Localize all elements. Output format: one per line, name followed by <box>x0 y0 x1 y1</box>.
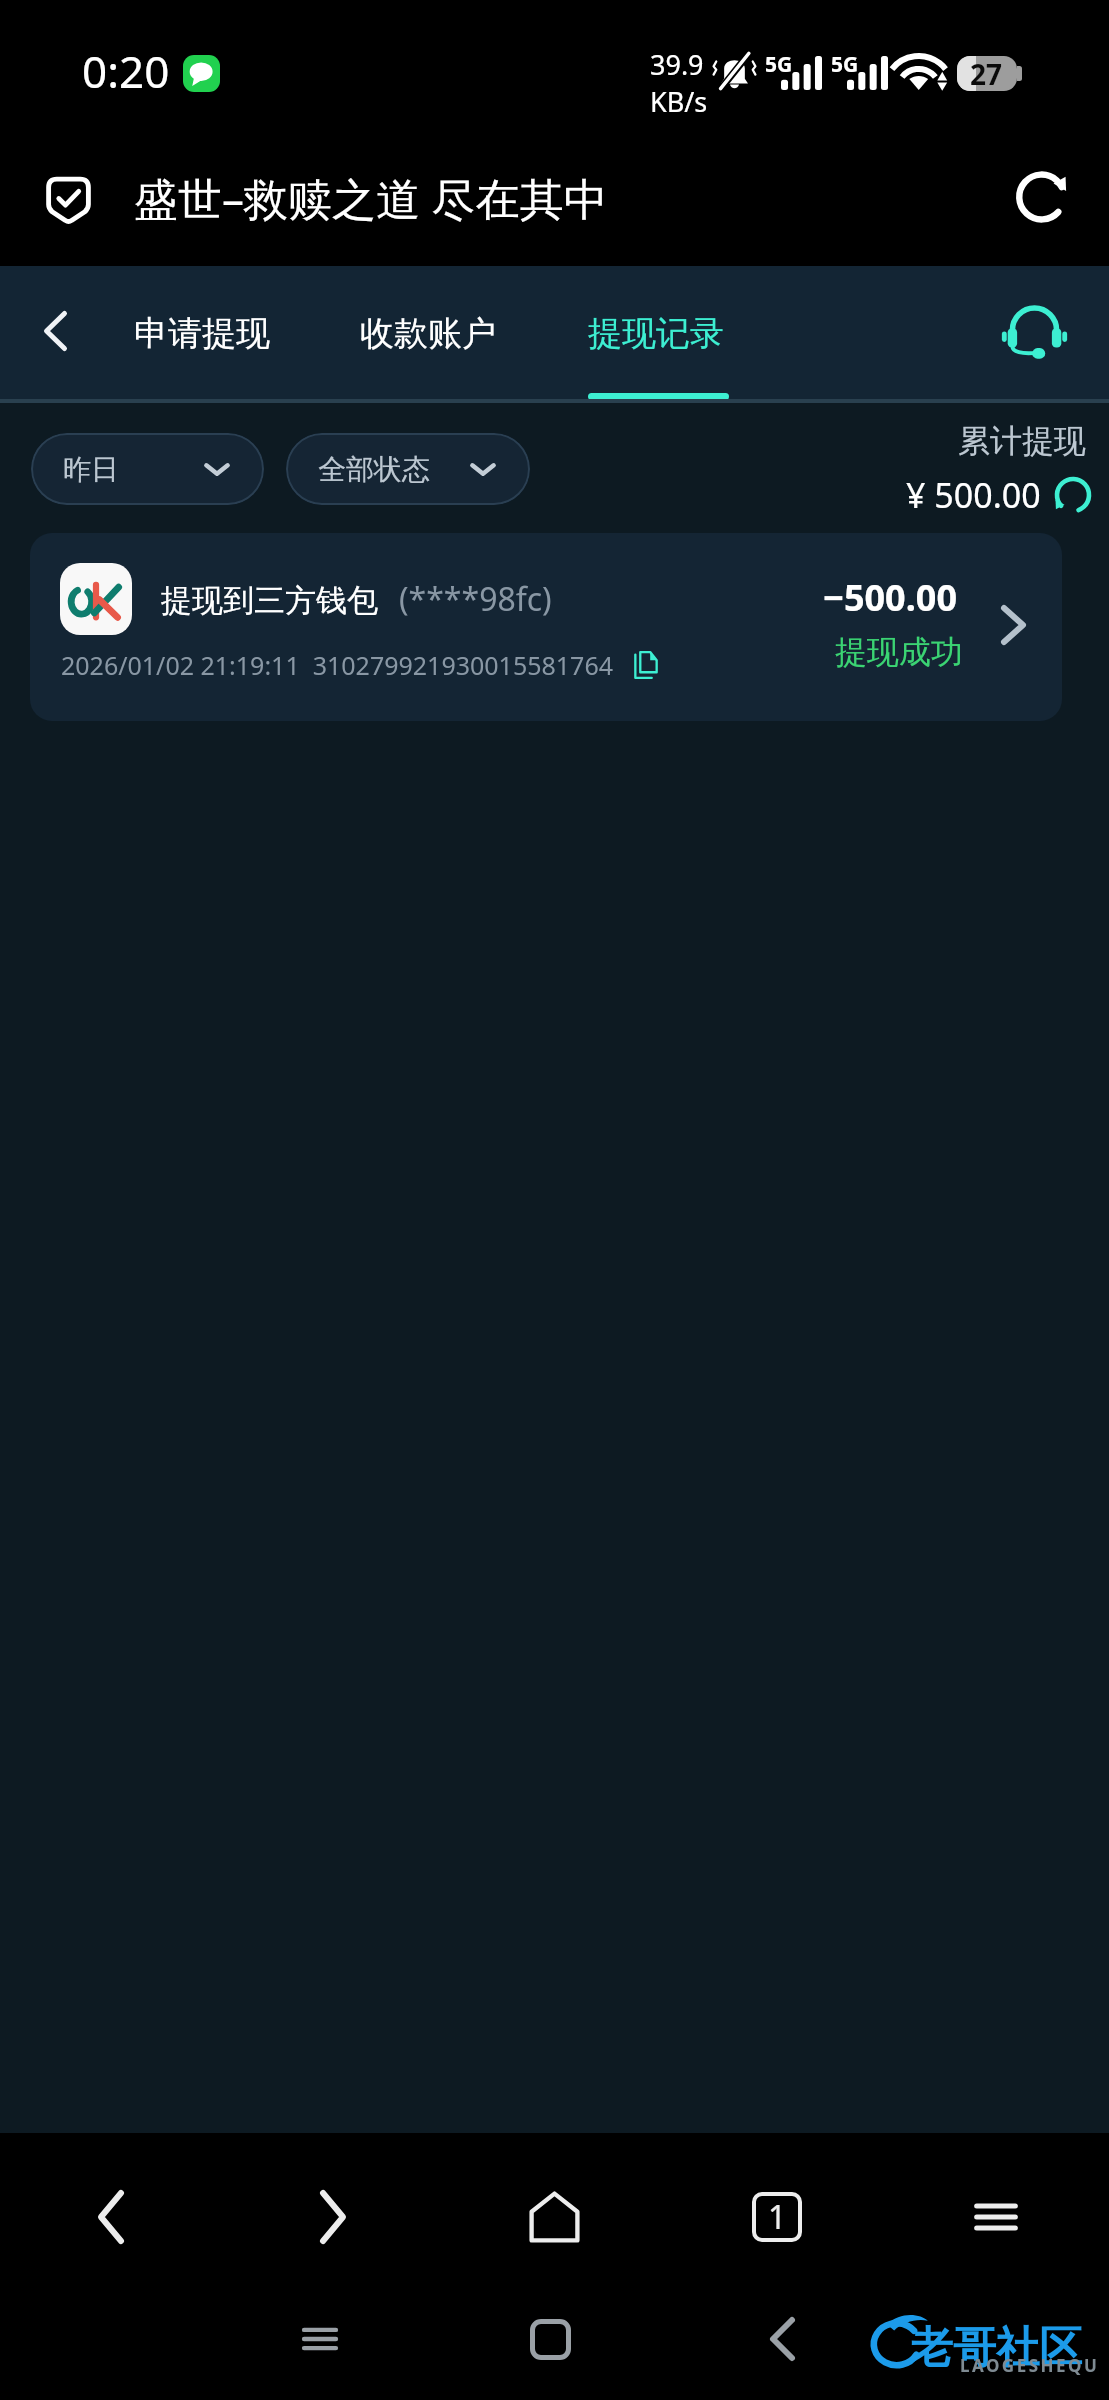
button[interactable]: 提现到三方钱包 <box>30 533 1062 721</box>
button[interactable]: Copy order number <box>623 641 669 687</box>
button[interactable]: Menu <box>964 2177 1030 2257</box>
button[interactable]: 全部状态 <box>286 433 530 505</box>
button[interactable]: Refresh total <box>1043 468 1099 524</box>
button[interactable]: Back <box>12 288 98 374</box>
staticText: 盛世–救赎之道 尽在其中 <box>134 168 608 228</box>
staticText: 39.9 <box>650 46 704 83</box>
staticText: 提现成功 <box>835 632 963 672</box>
staticText: 提现记录 <box>588 312 724 355</box>
staticText: LAOGESHEQU <box>960 2354 1100 2377</box>
button[interactable]: Forward <box>300 2177 366 2257</box>
staticText: 27 <box>970 56 1003 90</box>
button[interactable]: Home <box>521 2177 587 2257</box>
button[interactable]: Home <box>515 2293 585 2385</box>
staticText: 2026/01/02 21:19:11 31027992193001558176… <box>61 648 614 682</box>
staticText: 老哥社区 <box>910 2321 1082 2375</box>
staticText: 5G <box>831 50 859 79</box>
staticText: −500.00 <box>823 573 957 622</box>
staticText: 1 <box>768 2195 787 2239</box>
staticText: 5G <box>765 50 793 79</box>
staticText: KB/s <box>650 83 708 120</box>
button[interactable]: 昨日 <box>31 433 264 505</box>
staticText: 申请提现 <box>134 312 270 355</box>
staticText: 昨日 <box>63 452 119 487</box>
button[interactable]: 提现记录 <box>570 290 747 402</box>
button[interactable]: Back <box>78 2177 144 2257</box>
button[interactable]: 收款账户 <box>342 290 519 402</box>
staticText: ¥ 500.00 <box>906 472 1041 518</box>
button[interactable]: Secure connection <box>25 156 111 242</box>
staticText: 收款账户 <box>360 312 496 355</box>
button[interactable]: 申请提现 <box>116 290 293 402</box>
staticText: 累计提现 <box>958 421 1086 461</box>
staticText: 全部状态 <box>318 452 430 487</box>
staticText: 提现到三方钱包 <box>161 581 378 620</box>
button[interactable]: Back <box>750 2293 814 2385</box>
staticText: (****98fc) <box>399 577 552 621</box>
button[interactable]: Refresh page <box>1001 153 1089 241</box>
button[interactable]: Tabs <box>744 2177 810 2257</box>
staticText: 0:20 <box>82 41 170 101</box>
button[interactable]: Recent apps <box>286 2293 356 2385</box>
button[interactable]: Customer service <box>988 282 1080 382</box>
